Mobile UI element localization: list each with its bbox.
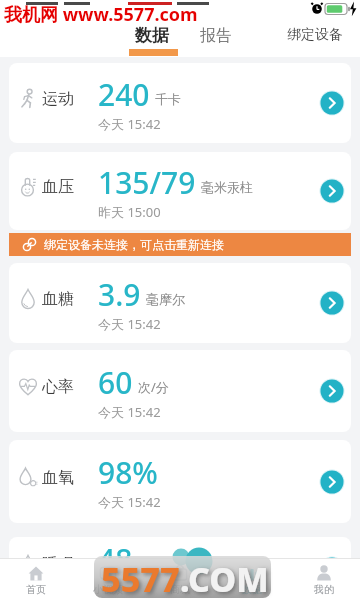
staticText: 今天 15:42	[98, 493, 161, 511]
button[interactable]: 心率	[9, 350, 351, 432]
button[interactable]: 绑定设备未连接，可点击重新连接	[9, 233, 351, 256]
staticText: 5577	[101, 556, 180, 600]
staticText: 今天 15:42	[98, 315, 161, 333]
staticText: 运动	[42, 89, 74, 109]
staticText: 毫米汞柱	[201, 179, 253, 195]
staticText: 心率	[42, 377, 74, 397]
button[interactable]: 运动	[9, 63, 351, 143]
staticText: 血压	[42, 177, 74, 197]
button[interactable]: 睡眠	[9, 537, 351, 600]
staticText: 毫摩尔	[146, 291, 185, 307]
staticText: 我机网 www.5577.com	[4, 2, 198, 27]
button[interactable]: 报告	[200, 26, 232, 46]
staticText: 240	[98, 74, 150, 115]
staticText: 分	[138, 556, 151, 572]
staticText: 3.9	[98, 274, 141, 315]
button[interactable]: 绑定设备	[287, 26, 343, 44]
staticText: 今天 15:42	[98, 403, 161, 421]
staticText: 小视频	[93, 583, 123, 596]
button[interactable]: 数据	[135, 25, 169, 46]
staticText: 首页	[26, 583, 46, 596]
staticText: 次/分	[138, 378, 169, 396]
staticText: 睡眠	[42, 555, 74, 575]
button[interactable]: 血糖	[9, 263, 351, 343]
staticText: 绑定设备未连接，可点击重新连接	[44, 237, 224, 252]
button[interactable]: 商城	[144, 559, 216, 600]
staticText: 今天 15:42	[98, 115, 161, 133]
staticText: 数据	[242, 583, 262, 596]
staticText: 135/79	[98, 162, 196, 203]
staticText: 48	[98, 539, 133, 580]
button[interactable]: 小视频	[72, 559, 144, 600]
button[interactable]: 血压	[9, 152, 351, 230]
staticText: 我的	[314, 583, 334, 596]
button[interactable]: 数据	[216, 559, 288, 600]
staticText: 98%	[98, 452, 158, 493]
staticText: 血糖	[42, 289, 74, 309]
staticText: .COM	[180, 556, 269, 600]
staticText: 昨天 15:00	[98, 203, 161, 221]
staticText: 商城	[170, 583, 190, 596]
button[interactable]: 我的	[288, 559, 360, 600]
staticText: 血氧	[42, 468, 74, 488]
staticText: 今天 15:42	[98, 580, 161, 598]
staticText: 60	[98, 362, 133, 403]
button[interactable]: 血氧	[9, 440, 351, 523]
staticText: 千卡	[155, 91, 181, 107]
button[interactable]: 首页	[0, 559, 72, 600]
